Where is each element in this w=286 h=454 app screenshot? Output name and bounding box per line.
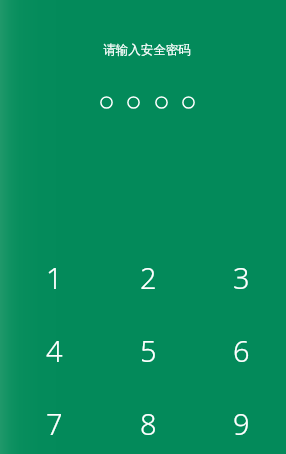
button[interactable]: 1 xyxy=(7,241,101,314)
button[interactable]: 6 xyxy=(194,314,286,387)
button[interactable]: 3 xyxy=(194,241,286,314)
button[interactable]: 7 xyxy=(7,387,101,454)
staticText: 4 xyxy=(46,331,63,370)
staticText: 请输入安全密码 xyxy=(103,42,191,58)
staticText: 5 xyxy=(140,331,157,370)
staticText: 6 xyxy=(233,331,250,370)
staticText: 9 xyxy=(233,404,250,443)
other: PIN entry, 4 digits xyxy=(98,92,197,113)
button[interactable]: 9 xyxy=(194,387,286,454)
button[interactable]: 5 xyxy=(101,314,195,387)
staticText: 1 xyxy=(46,258,63,297)
button[interactable]: 4 xyxy=(7,314,101,387)
staticText: 3 xyxy=(233,258,250,297)
button[interactable]: 8 xyxy=(101,387,195,454)
button[interactable]: 2 xyxy=(101,241,195,314)
staticText: 2 xyxy=(140,258,157,297)
staticText: 8 xyxy=(140,404,157,443)
staticText: 7 xyxy=(46,404,63,443)
